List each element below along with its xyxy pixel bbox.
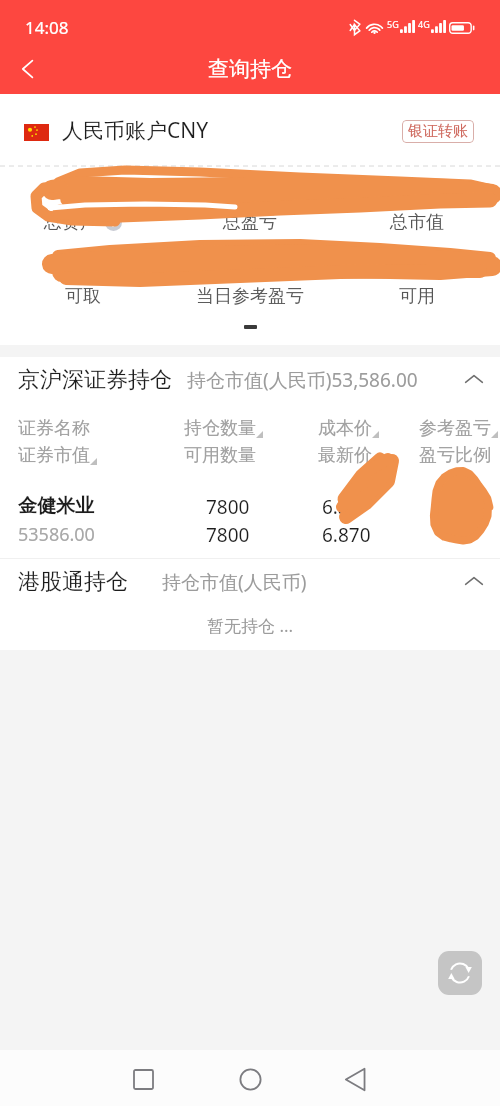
staticText: 可用 <box>399 285 435 308</box>
staticText: 港股通持仓 <box>18 568 128 596</box>
staticText: 总市值 <box>390 211 444 234</box>
staticText: 银证转账 <box>408 122 468 141</box>
staticText: 人民币账户CNY <box>62 116 209 145</box>
staticText: 总盈亏 <box>223 211 277 234</box>
staticText: 7800 <box>206 494 250 520</box>
staticText: 最新价 <box>318 444 372 467</box>
button[interactable]: 京沪深证券持仓 <box>0 357 500 403</box>
staticText: 参考盈亏 <box>419 417 491 440</box>
staticText: 查询持仓 <box>208 56 292 82</box>
staticText: 京沪深证券持仓 <box>18 366 172 394</box>
staticText: 当日参考盈亏 <box>196 285 304 308</box>
staticText: 持仓数量 <box>184 417 256 440</box>
staticText: ? <box>111 215 116 230</box>
staticText: 成本价 <box>318 417 372 440</box>
staticText: 证券市值 <box>18 444 90 467</box>
staticText: 总资产 <box>44 211 98 234</box>
staticText: 6.3 <box>322 494 349 520</box>
button[interactable]: Recents <box>118 1054 168 1104</box>
staticText: 金健米业 <box>18 494 94 518</box>
button[interactable]: Home <box>225 1054 275 1104</box>
staticText: 盈亏比例 <box>419 444 491 467</box>
button[interactable]: Back <box>6 47 50 91</box>
staticText: 53586.00 <box>18 522 95 547</box>
button[interactable]: 港股通持仓 <box>0 559 500 605</box>
staticText: 证券名称 <box>18 417 90 440</box>
staticText: 7800 <box>206 522 250 548</box>
staticText: 4G <box>418 18 430 30</box>
button[interactable]: Back <box>330 1054 380 1104</box>
staticText: 14:08 <box>25 16 69 39</box>
button[interactable]: 金健米业 <box>0 492 500 552</box>
staticText: 持仓市值(人民币) <box>162 569 307 595</box>
staticText: 持仓市值(人民币)53,586.00 <box>187 367 418 393</box>
button[interactable]: Refresh <box>438 951 482 995</box>
staticText: 可用数量 <box>184 444 256 467</box>
staticText: 可取 <box>65 285 101 308</box>
staticText: 暂无持仓 ... <box>207 614 294 637</box>
staticText: 6.870 <box>322 522 371 548</box>
button[interactable]: 银证转账 <box>402 120 474 143</box>
staticText: 5G <box>387 18 399 30</box>
